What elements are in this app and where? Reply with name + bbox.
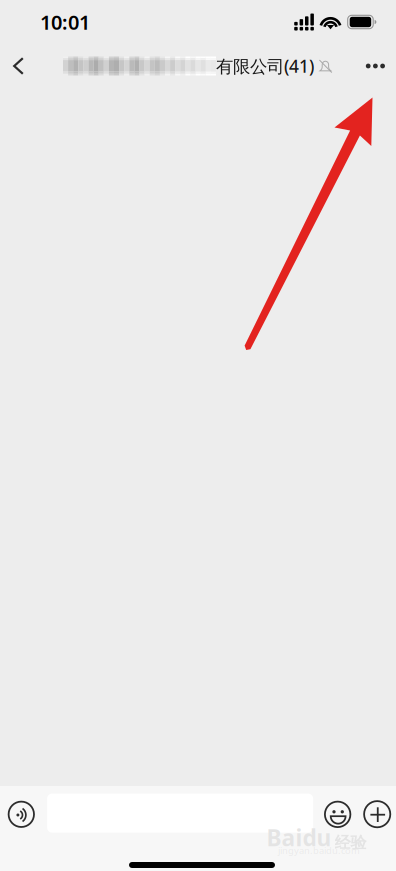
staticText: jingyan.baidu.com (278, 844, 360, 857)
button[interactable]: More (350, 44, 396, 88)
button[interactable]: Back (0, 44, 36, 88)
button[interactable]: Hold to talk (1, 786, 47, 840)
staticText: 10:01 (40, 9, 90, 35)
staticText: 经验 (334, 833, 366, 853)
button[interactable]: Message (47, 786, 313, 833)
button[interactable]: More options (356, 786, 395, 840)
staticText: Baidu (266, 822, 331, 852)
staticText: 有限公司(41) (216, 54, 314, 77)
button[interactable]: Emoji (313, 786, 356, 840)
